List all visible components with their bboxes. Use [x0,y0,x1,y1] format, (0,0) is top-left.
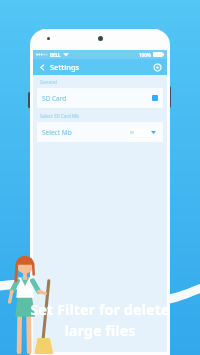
staticText: 100% [139,52,151,58]
button[interactable]: M [128,128,158,137]
staticText: General [40,79,57,85]
staticText: Select SD Card Mb [40,113,80,119]
staticText: large files [64,320,136,340]
staticText: Select Mb [42,128,72,137]
staticText: Set Filter for delete [30,299,170,319]
staticText: SD Card [42,94,67,103]
button[interactable]: SD Card [37,88,163,108]
staticText: M [130,130,134,135]
button[interactable]: Back [37,62,47,72]
staticText: BELL [50,52,61,58]
button[interactable]: Select Mb [37,122,163,142]
button[interactable]: Settings options [151,61,163,73]
staticText: Settings [50,62,80,72]
